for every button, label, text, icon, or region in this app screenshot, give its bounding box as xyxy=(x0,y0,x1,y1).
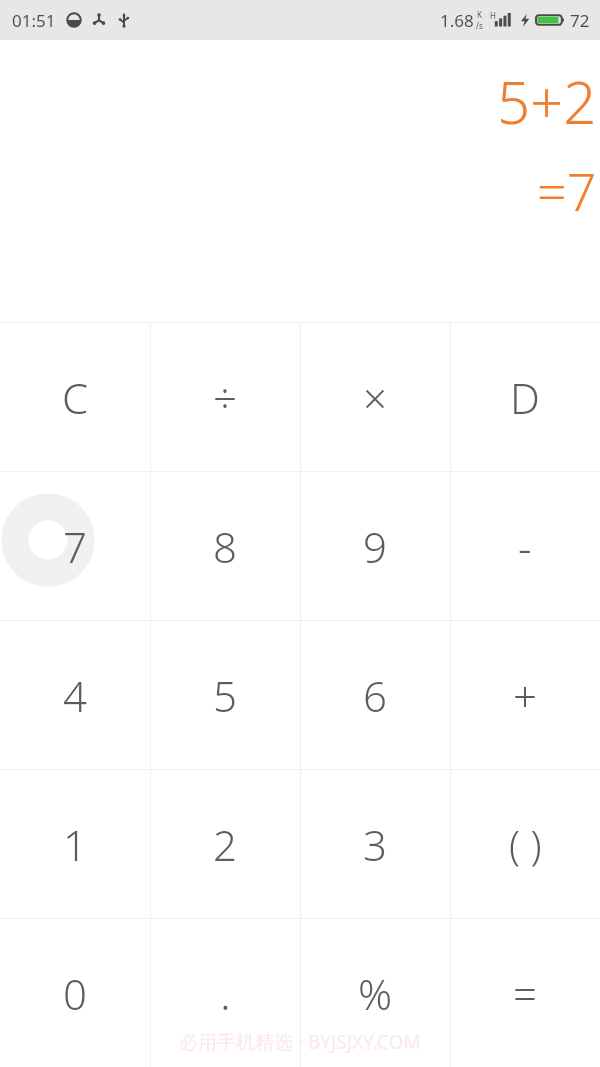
staticText: 9 xyxy=(363,518,387,575)
button[interactable]: 2 xyxy=(150,770,300,918)
button[interactable]: ÷ xyxy=(150,323,300,471)
button[interactable]: 9 xyxy=(300,472,450,620)
staticText: × xyxy=(363,369,387,426)
staticText: D xyxy=(510,369,540,426)
staticText: 2 xyxy=(213,816,237,873)
staticText: ÷ xyxy=(213,369,237,426)
button[interactable]: - xyxy=(450,472,600,620)
button[interactable]: ( ) xyxy=(450,770,600,918)
staticText: 4 xyxy=(63,667,87,724)
button[interactable]: 4 xyxy=(0,621,150,769)
button[interactable]: + xyxy=(450,621,600,769)
staticText: H xyxy=(490,10,496,21)
staticText: C xyxy=(62,369,89,426)
button[interactable]: 7 xyxy=(0,472,150,620)
staticText: - xyxy=(518,518,532,575)
staticText: 5+2 xyxy=(497,62,597,141)
staticText: 1.68 xyxy=(440,9,474,32)
staticText: =7 xyxy=(537,155,597,226)
staticText: K xyxy=(477,9,482,20)
staticText: 必用手机精选 · BYJSJXY.COM xyxy=(179,1029,421,1055)
staticText: . xyxy=(220,963,231,1023)
staticText: = xyxy=(513,965,537,1022)
button[interactable]: 6 xyxy=(300,621,450,769)
button[interactable]: . xyxy=(150,919,300,1067)
staticText: 6 xyxy=(363,667,387,724)
button[interactable]: 1 xyxy=(0,770,150,918)
staticText: + xyxy=(513,667,537,724)
staticText: 1 xyxy=(63,816,87,873)
staticText: 72 xyxy=(570,9,590,32)
button[interactable]: D xyxy=(450,323,600,471)
button[interactable]: 8 xyxy=(150,472,300,620)
staticText: 8 xyxy=(213,518,237,575)
staticText: 5 xyxy=(213,667,237,724)
button[interactable]: 5 xyxy=(150,621,300,769)
button[interactable]: = xyxy=(450,919,600,1067)
button[interactable]: % xyxy=(300,919,450,1067)
staticText: % xyxy=(358,965,393,1022)
button[interactable]: 0 xyxy=(0,919,150,1067)
staticText: 7 xyxy=(63,518,87,575)
button[interactable]: × xyxy=(300,323,450,471)
button[interactable]: C xyxy=(0,323,150,471)
staticText: /s xyxy=(476,20,483,31)
staticText: ( ) xyxy=(509,817,542,871)
staticText: 0 xyxy=(63,965,87,1022)
staticText: 3 xyxy=(363,816,387,873)
staticText: 01:51 xyxy=(12,9,56,32)
button[interactable]: 3 xyxy=(300,770,450,918)
